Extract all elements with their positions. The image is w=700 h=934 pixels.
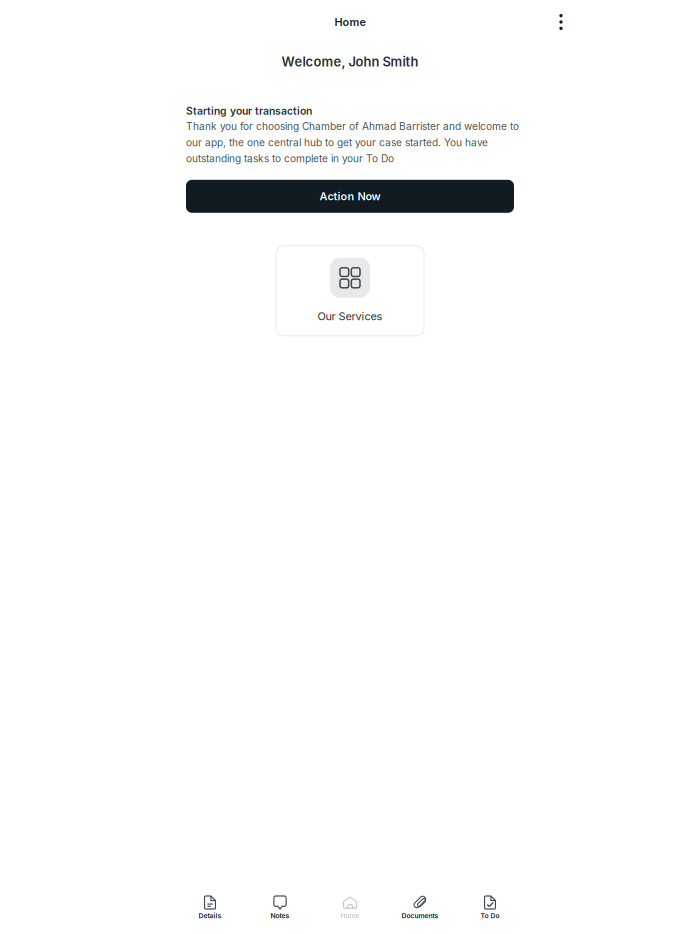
staticText: Action Now: [319, 190, 380, 203]
button[interactable]: To Do: [455, 890, 525, 926]
staticText: Notes: [270, 912, 289, 920]
button[interactable]: More options: [546, 6, 576, 38]
button[interactable]: Home: [315, 890, 385, 926]
staticText: To Do: [480, 912, 499, 920]
staticText: Starting your transaction: [186, 105, 312, 117]
button[interactable]: Notes: [245, 890, 315, 926]
staticText: Welcome, John Smith: [281, 54, 418, 70]
staticText: Thank you for choosing Chamber of Ahmad …: [186, 120, 519, 165]
staticText: Home: [340, 912, 359, 920]
staticText: Documents: [401, 912, 438, 920]
staticText: Our Services: [317, 310, 382, 323]
button[interactable]: Details: [175, 890, 245, 926]
staticText: Home: [334, 15, 365, 29]
staticText: Details: [198, 912, 221, 920]
button[interactable]: Action Now: [186, 180, 514, 213]
button[interactable]: Documents: [385, 890, 455, 926]
button[interactable]: Our Services: [276, 246, 424, 336]
